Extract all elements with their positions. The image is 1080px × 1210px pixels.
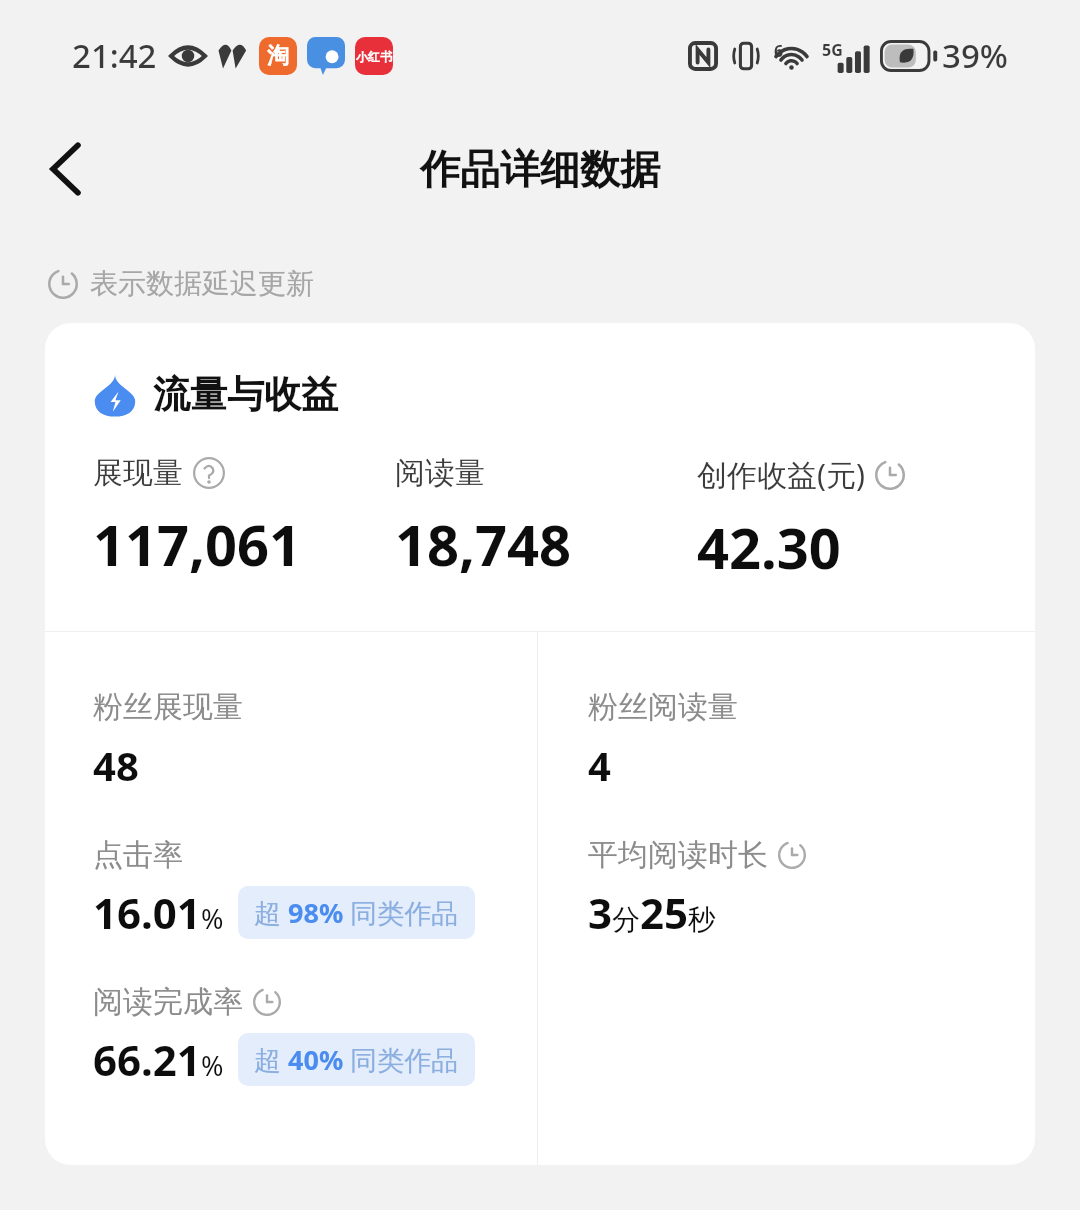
button[interactable]: Back (28, 131, 104, 207)
staticText: 作品详细数据 (420, 144, 660, 194)
button[interactable]: 点击率 (93, 836, 475, 941)
staticText: 淘 (267, 42, 289, 70)
button[interactable]: 创作收益(元) (697, 454, 999, 585)
staticText: 18,748 (395, 506, 572, 582)
staticText: 16.01% (93, 884, 224, 941)
staticText: 39% (942, 33, 1008, 78)
staticText: 阅读完成率 (93, 983, 243, 1021)
staticText: 6 (774, 40, 784, 62)
staticText: 粉丝展现量 (93, 688, 243, 726)
staticText: 4 (588, 738, 611, 792)
staticText: 超 98% 同类作品 (254, 894, 459, 931)
staticText: 小红书 (356, 49, 392, 64)
staticText: 点击率 (93, 836, 183, 874)
staticText: 表示数据延迟更新 (90, 266, 314, 301)
button[interactable]: 超 40% 同类作品 (238, 1033, 475, 1086)
staticText: 流量与收益 (153, 371, 338, 418)
button[interactable]: 阅读量 (395, 454, 697, 582)
button[interactable]: 粉丝阅读量 (588, 688, 738, 792)
staticText: 平均阅读时长 (588, 836, 768, 874)
staticText: 21:42 (72, 33, 157, 78)
staticText: 阅读量 (395, 454, 485, 492)
staticText: 超 40% 同类作品 (254, 1041, 459, 1078)
button[interactable]: 超 98% 同类作品 (238, 886, 475, 939)
staticText: 创作收益(元) (697, 454, 865, 495)
staticText: 3分25秒 (588, 884, 717, 941)
staticText: 48 (93, 738, 139, 792)
staticText: 42.30 (697, 509, 841, 585)
staticText: 5G (822, 39, 843, 61)
button[interactable]: 展现量 (93, 454, 395, 582)
button[interactable]: 平均阅读时长 (588, 836, 806, 941)
staticText: 粉丝阅读量 (588, 688, 738, 726)
staticText: 66.21% (93, 1031, 224, 1088)
button[interactable]: 粉丝展现量 (93, 688, 243, 792)
staticText: 展现量 (93, 454, 183, 492)
button[interactable]: 阅读完成率 (93, 983, 475, 1088)
staticText: 117,061 (93, 506, 302, 582)
